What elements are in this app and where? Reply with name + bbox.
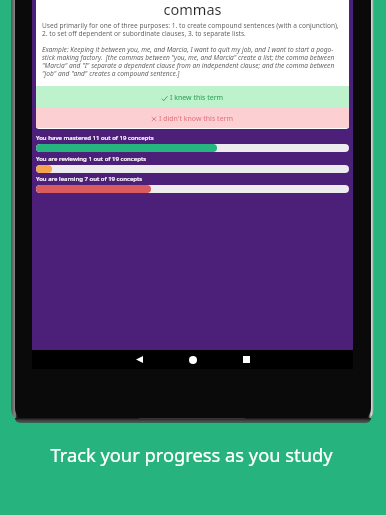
staticText: You have mastered 11 out of 19 concepts [36,134,154,142]
button[interactable]: Home [178,350,208,369]
staticText: Used primarily for one of three purposes… [42,21,343,38]
staticText: I knew this term [170,93,224,103]
staticText: You are reviewing 1 out of 19 concepts [36,155,147,163]
staticText: commas [42,0,343,19]
button[interactable]: Back [124,350,154,369]
staticText: Track your progress as you study [50,442,333,467]
staticText: I didn't know this term [159,114,234,124]
button[interactable]: I didn't know this term [36,107,349,128]
button[interactable]: I knew this term [36,86,349,107]
staticText: Example: Keeping it between you, me, and… [42,45,343,78]
staticText: You are learning 7 out of 19 concepts [36,175,143,183]
button[interactable]: Recents [231,350,261,369]
